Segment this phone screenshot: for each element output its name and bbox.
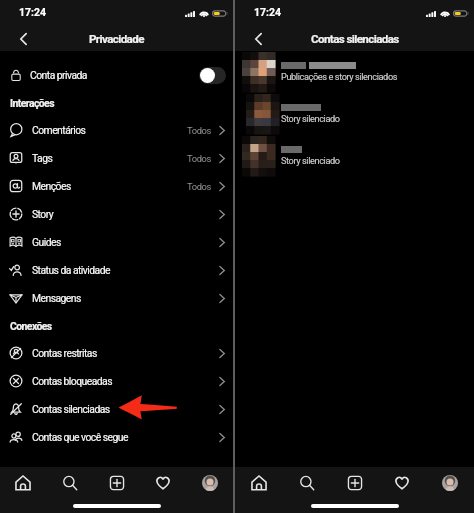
button[interactable]: Activity	[151, 471, 175, 495]
button[interactable]: Story	[0, 200, 233, 228]
staticText: Story silenciado	[281, 155, 340, 166]
staticText: 17:24	[19, 6, 47, 18]
button[interactable]: Back	[12, 28, 34, 50]
staticText: Contas silenciadas	[32, 403, 110, 415]
staticText: Mensagens	[32, 292, 81, 304]
button[interactable]: Search	[58, 471, 82, 495]
button[interactable]: Profile	[438, 471, 462, 495]
button[interactable]: Comentários	[0, 116, 233, 144]
button[interactable]: Status da atividade	[0, 256, 233, 284]
staticText: Todos	[187, 153, 212, 164]
staticText: Contas silenciadas	[311, 32, 399, 46]
button[interactable]: Guides	[0, 228, 233, 256]
staticText: Contas restritas	[32, 347, 97, 359]
button[interactable]: Create	[105, 471, 129, 495]
staticText: Conexões	[10, 320, 52, 332]
button[interactable]: Search	[295, 471, 319, 495]
button[interactable]: Home	[11, 471, 35, 495]
staticText: 17:24	[254, 6, 282, 18]
button[interactable]: Contas que você segue	[0, 423, 233, 451]
button[interactable]: Story silenciado	[235, 93, 474, 135]
staticText: Comentários	[32, 124, 86, 136]
button[interactable]: Profile	[198, 471, 222, 495]
staticText: Publicações e story silenciados	[281, 71, 398, 82]
staticText: Todos	[187, 181, 212, 192]
staticText: Contas que você segue	[32, 431, 128, 443]
button[interactable]: Activity	[390, 471, 414, 495]
staticText: Contas bloqueadas	[32, 375, 113, 387]
button[interactable]: Conta privada	[0, 61, 233, 89]
button[interactable]: Home	[247, 471, 271, 495]
button[interactable]: Publicações e story silenciados	[235, 51, 474, 93]
staticText: Menções	[32, 180, 71, 192]
staticText: Guides	[32, 236, 61, 248]
button[interactable]: Mensagens	[0, 284, 233, 312]
staticText: Todos	[187, 125, 212, 136]
button[interactable]: Contas silenciadas	[0, 395, 233, 423]
staticText: Privacidade	[89, 32, 144, 46]
button[interactable]: Contas restritas	[0, 339, 233, 367]
staticText: Story	[32, 208, 54, 220]
staticText: Story silenciado	[281, 113, 340, 124]
staticText: Conta privada	[30, 69, 87, 81]
staticText: Tags	[32, 152, 53, 164]
button[interactable]: Create	[343, 471, 367, 495]
button[interactable]: Menções	[0, 172, 233, 200]
staticText: Privacidade da conta	[10, 41, 108, 53]
button[interactable]: Tags	[0, 144, 233, 172]
staticText: Interações	[10, 97, 54, 109]
button[interactable]: Back	[247, 28, 269, 50]
button[interactable]: Story silenciado	[235, 135, 474, 177]
button[interactable]: Contas bloqueadas	[0, 367, 233, 395]
staticText: Status da atividade	[32, 264, 110, 276]
